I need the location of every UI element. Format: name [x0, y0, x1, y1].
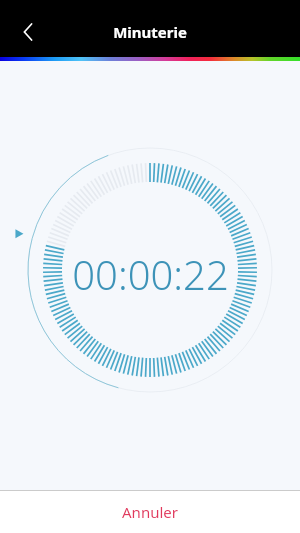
button[interactable]: Annuler	[0, 491, 300, 533]
staticText: Annuler	[122, 502, 178, 522]
staticText: 00:00:22	[72, 247, 229, 301]
button[interactable]: Back	[8, 12, 48, 52]
staticText: Minuterie	[113, 22, 187, 42]
